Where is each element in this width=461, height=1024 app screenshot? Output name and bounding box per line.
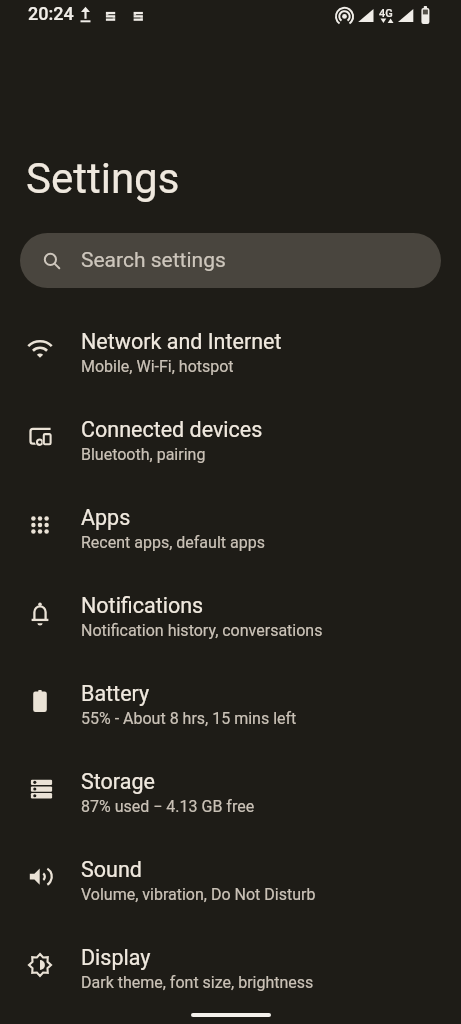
staticText: Connected devices [81,417,263,442]
staticText: Mobile, Wi-Fi, hotspot [81,357,234,376]
button[interactable]: Network and Internet [0,308,461,396]
button[interactable]: Display [0,924,461,1012]
staticText: Sound [81,857,142,882]
staticText: Storage [81,769,155,794]
staticText: Notification history, conversations [81,621,323,640]
staticText: Notifications [81,593,204,618]
button[interactable]: Sound [0,836,461,924]
staticText: Recent apps, default apps [81,533,265,552]
staticText: Battery [81,681,150,706]
staticText: 87% used − 4.13 GB free [81,797,255,816]
button[interactable]: Connected devices [0,396,461,484]
staticText: Dark theme, font size, brightness [81,973,314,992]
staticText: Search settings [81,248,226,273]
staticText: 4G [379,7,393,20]
button[interactable]: Battery [0,660,461,748]
staticText: Display [81,945,151,970]
staticText: Network and Internet [81,329,282,354]
button[interactable]: Apps [0,484,461,572]
button[interactable]: Notifications [0,572,461,660]
button[interactable]: Search settings [20,233,441,288]
staticText: 55% - About 8 hrs, 15 mins left [81,709,297,728]
staticText: 20:24 [28,3,74,24]
button[interactable]: Storage [0,748,461,836]
staticText: Settings [26,154,180,203]
staticText: Apps [81,505,131,530]
staticText: Volume, vibration, Do Not Disturb [81,885,316,904]
staticText: Bluetooth, pairing [81,445,206,464]
